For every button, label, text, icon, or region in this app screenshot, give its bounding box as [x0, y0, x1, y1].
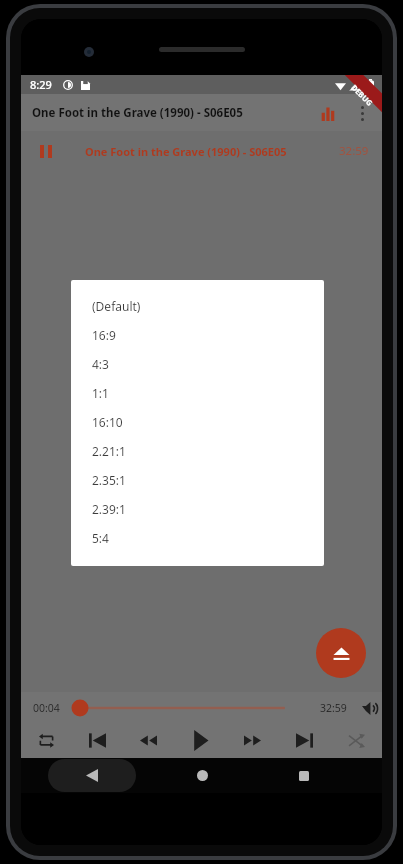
button[interactable]: More options: [345, 96, 379, 130]
button[interactable]: Volume: [356, 695, 382, 721]
staticText: 2.39:1: [92, 501, 126, 517]
button[interactable]: 2.35:1: [71, 465, 324, 494]
button[interactable]: [71, 697, 314, 719]
button[interactable]: Recents: [284, 758, 324, 793]
button[interactable]: Rewind: [123, 723, 174, 758]
staticText: One Foot in the Grave (1990) - S06E05: [85, 144, 287, 159]
button[interactable]: Next: [278, 723, 330, 758]
button[interactable]: Play: [174, 723, 226, 758]
staticText: One Foot in the Grave (1990) - S06E05: [32, 105, 243, 121]
staticText: 16:10: [92, 414, 123, 430]
staticText: 5:4: [92, 530, 109, 546]
button[interactable]: 4:3: [71, 349, 324, 378]
button[interactable]: 1:1: [71, 378, 324, 407]
button[interactable]: One Foot in the Grave (1990) - S06E05: [21, 131, 382, 171]
staticText: DEBUG: [349, 82, 375, 108]
button[interactable]: Back: [48, 759, 136, 792]
button[interactable]: Repeat: [21, 723, 72, 758]
staticText: 2.21:1: [92, 443, 126, 459]
button[interactable]: 16:9: [71, 320, 324, 349]
button[interactable]: 16:10: [71, 407, 324, 436]
button[interactable]: (Default): [71, 291, 324, 320]
staticText: 8:29: [30, 77, 52, 92]
button[interactable]: Fast forward: [226, 723, 278, 758]
button[interactable]: Equalizer: [311, 96, 345, 130]
button[interactable]: 5:4: [71, 523, 324, 552]
button[interactable]: Previous: [72, 723, 123, 758]
staticText: 00:04: [33, 701, 60, 715]
staticText: 32:59: [320, 701, 347, 715]
button[interactable]: Shuffle: [330, 723, 382, 758]
button[interactable]: Home: [182, 758, 222, 793]
staticText: 1:1: [92, 385, 109, 401]
staticText: 4:3: [92, 356, 109, 372]
staticText: 16:9: [92, 327, 116, 343]
button[interactable]: Eject: [316, 628, 366, 678]
button[interactable]: 2.39:1: [71, 494, 324, 523]
staticText: 2.35:1: [92, 472, 126, 488]
staticText: 32:59: [339, 143, 369, 159]
button[interactable]: 2.21:1: [71, 436, 324, 465]
staticText: (Default): [92, 298, 141, 314]
